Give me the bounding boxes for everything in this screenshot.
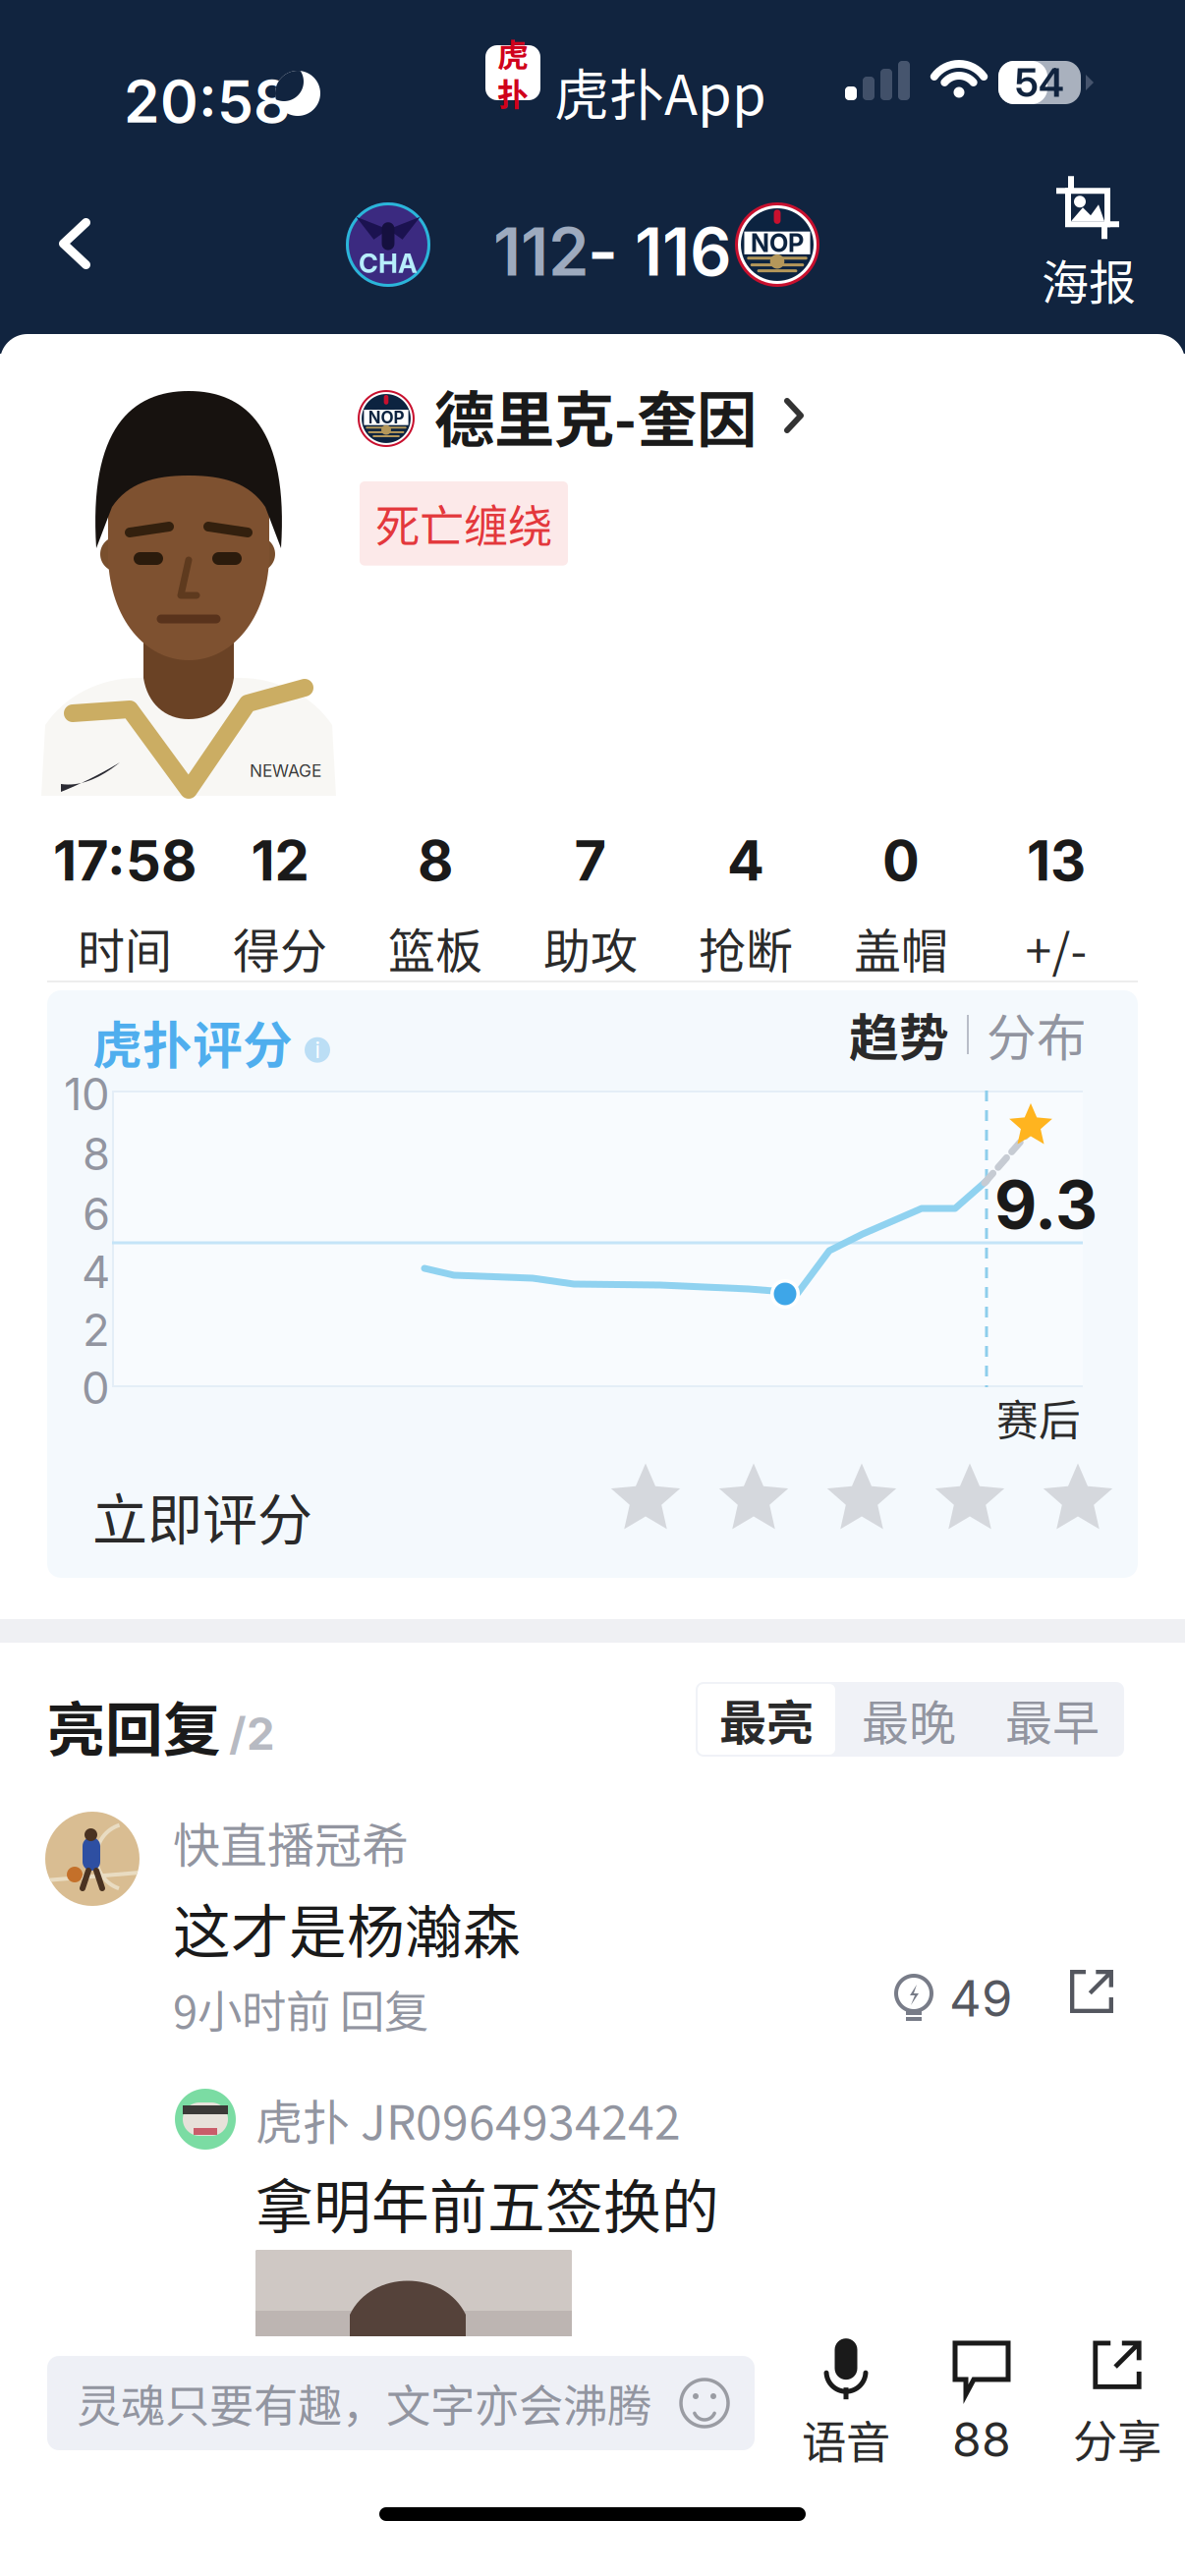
button[interactable]: 分享 xyxy=(1067,1967,1116,2016)
staticText: 0 xyxy=(82,1361,110,1415)
staticText: 2 xyxy=(83,1303,110,1357)
staticText: i xyxy=(315,1036,320,1063)
button[interactable]: CHA 112 - 116 NOP xyxy=(334,191,831,299)
staticText: 扑 xyxy=(497,70,529,115)
staticText: +/- xyxy=(1025,913,1087,982)
staticText: 灵魂只要有趣，文字亦会沸腾 xyxy=(77,2371,651,2435)
staticText: 4 xyxy=(82,1245,110,1299)
staticText: 虎扑评分 xyxy=(92,1006,293,1078)
staticText: 亮回复 xyxy=(47,1684,221,1767)
staticText: 8 xyxy=(418,827,453,894)
staticText: 最晚 xyxy=(862,1685,956,1753)
button[interactable]: 亮了 49 xyxy=(892,1971,1012,2026)
staticText: 6 xyxy=(83,1187,110,1241)
staticText: 112 xyxy=(493,212,590,291)
staticText: 快直播冠希 xyxy=(173,1808,409,1876)
staticText: 20:58 xyxy=(124,67,291,137)
staticText: 虎扑 JR0964934242 xyxy=(255,2085,681,2153)
staticText: 10 xyxy=(64,1067,110,1121)
button[interactable]: 最晚 xyxy=(837,1682,981,1757)
staticText: 时间 xyxy=(78,913,172,982)
button[interactable]: 分布 xyxy=(994,1008,1079,1061)
button[interactable]: 评1分 xyxy=(609,1462,682,1535)
staticText: 49 xyxy=(949,1968,1012,2028)
staticText: 分布 xyxy=(987,998,1087,1071)
button[interactable]: 最亮 xyxy=(696,1682,837,1757)
staticText: NOP xyxy=(751,228,804,258)
button[interactable]: 评4分 xyxy=(933,1462,1006,1535)
staticText: /2 xyxy=(229,1707,275,1760)
button[interactable]: 分享 xyxy=(1049,2344,1185,2464)
staticText: 最亮 xyxy=(719,1685,814,1753)
staticText: 拿明年前五签换的 xyxy=(255,2161,719,2245)
staticText: - xyxy=(588,212,618,291)
staticText: CHA xyxy=(359,247,418,279)
button[interactable]: 趋势 xyxy=(857,1008,941,1061)
button[interactable]: 海报 xyxy=(1030,183,1148,307)
staticText: 9.3 xyxy=(994,1165,1098,1244)
staticText: 趋势 xyxy=(849,998,949,1071)
staticText: 分享 xyxy=(1073,2406,1161,2471)
staticText: 赛后 xyxy=(996,1387,1081,1448)
staticText: 助攻 xyxy=(543,913,638,982)
staticText: 死亡缠绕 xyxy=(375,491,552,556)
staticText: 116 xyxy=(635,212,732,291)
staticText: 9小时前 回复 xyxy=(173,1977,428,2041)
button[interactable]: 返回 xyxy=(16,183,134,305)
staticText: 0 xyxy=(882,827,920,894)
staticText: 立即评分 xyxy=(92,1476,312,1555)
staticText: 12 xyxy=(251,827,309,894)
staticText: 语音 xyxy=(802,2407,890,2472)
staticText: 8 xyxy=(83,1127,110,1181)
staticText: 虎扑App xyxy=(554,51,766,131)
button[interactable]: 灵魂只要有趣，文字亦会沸腾 xyxy=(47,2356,755,2450)
button[interactable]: 评3分 xyxy=(825,1462,898,1535)
staticText: 盖帽 xyxy=(854,913,948,982)
button[interactable]: NOP xyxy=(358,377,804,454)
staticText: 海报 xyxy=(1042,245,1136,313)
staticText: 88 xyxy=(952,2411,1011,2468)
staticText: 54 xyxy=(1015,59,1064,106)
staticText: 虎 xyxy=(497,30,529,76)
staticText: 13 xyxy=(1027,827,1086,894)
button[interactable]: 最早 xyxy=(981,1682,1124,1757)
staticText: 这才是杨瀚森 xyxy=(173,1886,521,1970)
button[interactable]: 88 xyxy=(914,2344,1049,2464)
staticText: 抢断 xyxy=(699,913,793,982)
staticText: 德里克-奎因 xyxy=(434,372,757,459)
staticText: 4 xyxy=(727,827,764,894)
staticText: NEWAGE xyxy=(250,760,321,781)
staticText: 17:58 xyxy=(53,827,197,894)
staticText: 篮板 xyxy=(388,913,482,982)
staticText: 7 xyxy=(574,827,607,894)
staticText: 得分 xyxy=(233,913,327,982)
staticText: NOP xyxy=(368,407,404,427)
button[interactable]: 评5分 xyxy=(1042,1462,1114,1535)
button[interactable]: 评2分 xyxy=(717,1462,790,1535)
button[interactable]: 语音 xyxy=(778,2344,914,2464)
staticText: 最早 xyxy=(1005,1685,1100,1753)
